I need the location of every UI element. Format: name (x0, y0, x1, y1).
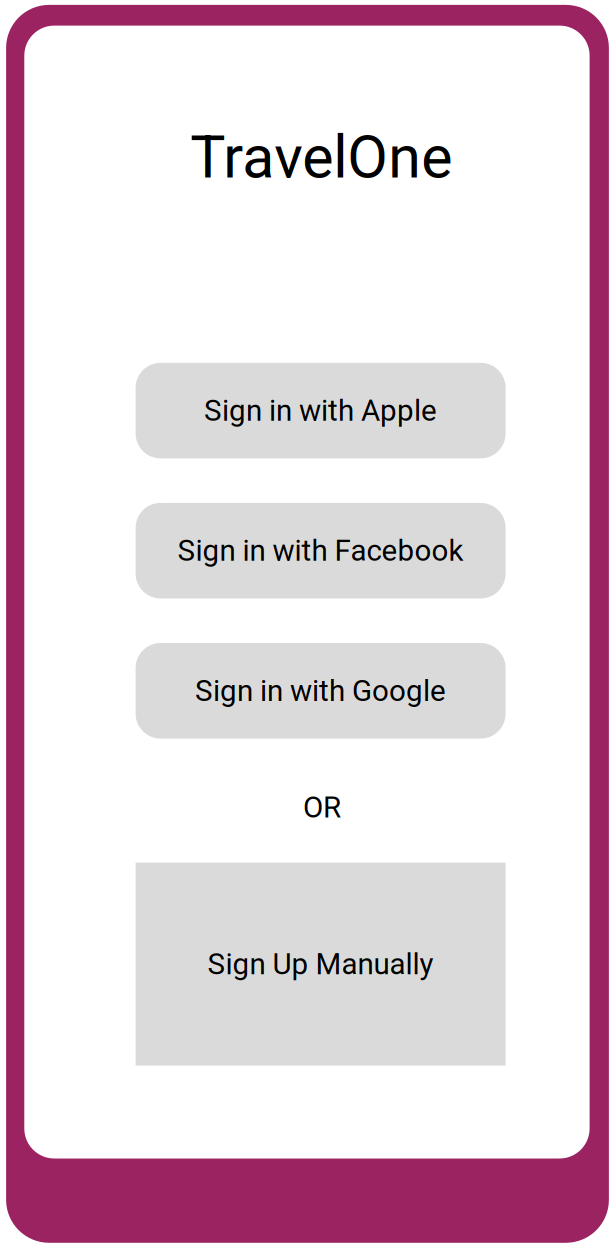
button[interactable]: Sign in with Google (136, 643, 506, 739)
button[interactable]: Sign in with Apple (136, 363, 506, 458)
button[interactable]: Sign Up Manually (136, 863, 506, 1066)
staticText: TravelOne (190, 123, 452, 192)
staticText: Sign Up Manually (208, 947, 434, 981)
staticText: Sign in with Facebook (178, 533, 464, 568)
staticText: Sign in with Apple (204, 393, 437, 428)
staticText: Sign in with Google (195, 673, 446, 708)
staticText: OR (303, 790, 341, 825)
button[interactable]: Sign in with Facebook (136, 503, 506, 598)
